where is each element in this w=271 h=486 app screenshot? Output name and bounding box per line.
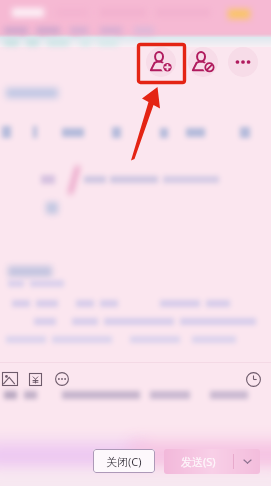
staticText: 发送(S)	[181, 454, 216, 469]
button[interactable]: Block contact	[188, 47, 218, 77]
button[interactable]: Send options	[234, 449, 260, 474]
button[interactable]: Schedule send	[242, 368, 264, 390]
staticText: 关闭(C)	[106, 454, 142, 469]
button[interactable]: More	[51, 368, 73, 390]
button[interactable]: Add contact	[146, 47, 176, 77]
button[interactable]: More options	[228, 47, 258, 77]
button[interactable]: 发送(S)	[164, 449, 233, 474]
button[interactable]: Insert picture	[0, 368, 21, 390]
button[interactable]: 关闭(C)	[93, 449, 155, 473]
button[interactable]: Payment	[24, 368, 46, 390]
